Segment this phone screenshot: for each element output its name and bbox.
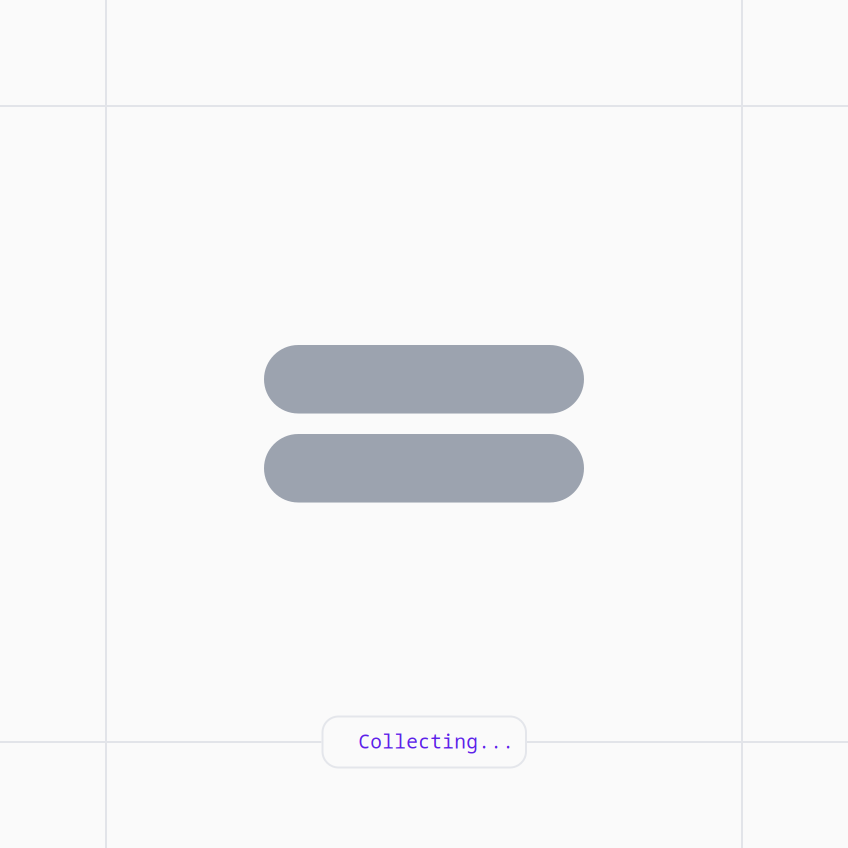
button[interactable]: Collecting... xyxy=(321,715,527,768)
staticText: Collecting... xyxy=(358,728,514,754)
